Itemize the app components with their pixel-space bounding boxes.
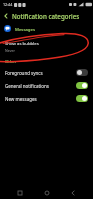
button[interactable]: Recent apps (13, 186, 27, 199)
staticText: Other (5, 59, 17, 65)
staticText: New messages (5, 96, 76, 102)
button[interactable]: Navigate up (0, 10, 12, 22)
button[interactable]: Show as bubbles (0, 35, 93, 54)
staticText: Never (5, 48, 16, 53)
button[interactable]: General notifications (0, 79, 93, 92)
staticText: Notification categories (12, 12, 80, 20)
button[interactable]: New messages (0, 92, 93, 105)
button[interactable]: Home (40, 186, 54, 199)
staticText: 12:44 (3, 2, 13, 7)
staticText: Messages (15, 26, 35, 32)
staticText: Show as bubbles (5, 40, 39, 46)
staticText: General notifications (5, 83, 76, 89)
button[interactable]: Back (66, 186, 80, 199)
staticText: Foreground syncs (5, 70, 76, 76)
button[interactable]: Foreground syncs (0, 66, 93, 79)
